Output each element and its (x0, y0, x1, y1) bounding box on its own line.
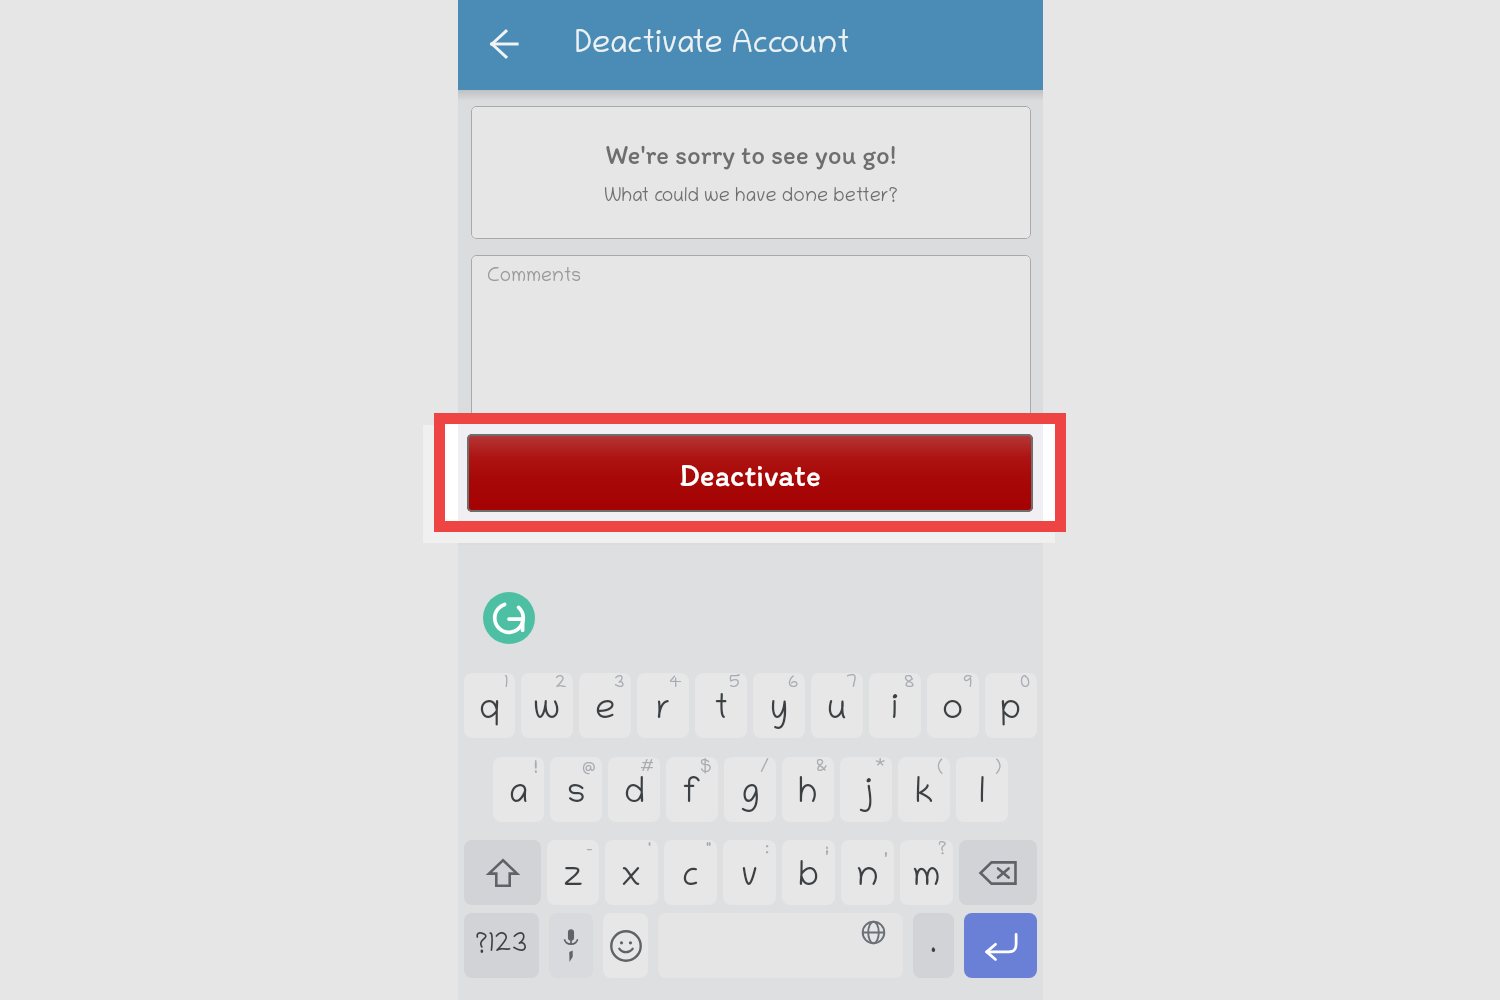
button[interactable]: e (579, 673, 631, 738)
button[interactable]: Voice input (549, 913, 593, 978)
staticText: @ (582, 758, 596, 778)
button[interactable]: u (811, 673, 863, 738)
staticText: 0 (1020, 674, 1031, 694)
staticText: s (567, 776, 586, 816)
staticText: w (533, 692, 561, 732)
button[interactable]: x (605, 840, 658, 905)
staticText: " (706, 841, 711, 861)
button[interactable]: Deactivate (467, 434, 1033, 512)
button[interactable]: o (927, 673, 979, 738)
staticText: k (915, 776, 934, 816)
staticText: y (771, 692, 788, 732)
staticText: d (624, 776, 645, 816)
staticText: p (1000, 692, 1022, 732)
staticText: * (875, 758, 886, 778)
staticText: b (798, 859, 820, 899)
button[interactable]: t (695, 673, 747, 738)
staticText: $ (700, 758, 712, 778)
staticText: v (741, 859, 759, 899)
staticText: ; (825, 841, 829, 861)
button[interactable]: Enter (964, 913, 1037, 978)
button[interactable]: Emoji (603, 913, 648, 978)
staticText: & (816, 758, 828, 778)
staticText: l (979, 776, 986, 816)
staticText: m (912, 859, 941, 899)
staticText: ( (937, 758, 944, 778)
staticText: x (621, 859, 642, 899)
button[interactable]: i (869, 673, 921, 738)
button[interactable]: b (782, 840, 835, 905)
button[interactable]: k (898, 757, 950, 822)
staticText: ?123 (475, 931, 528, 961)
button[interactable]: Comments (471, 255, 1031, 431)
staticText: z (563, 859, 584, 899)
button[interactable]: v (723, 840, 776, 905)
staticText: u (827, 692, 847, 732)
button[interactable]: y (753, 673, 805, 738)
button[interactable]: Grammarly (483, 592, 535, 644)
button[interactable]: h (782, 757, 834, 822)
staticText: Deactivate (679, 457, 821, 494)
button[interactable]: s (550, 757, 602, 822)
button[interactable]: f (666, 757, 718, 822)
staticText: . (930, 928, 937, 964)
staticText: We're sorry to see you go! (605, 138, 897, 170)
staticText: t (714, 692, 729, 732)
button[interactable]: Backspace (959, 840, 1037, 905)
staticText: i (891, 692, 899, 732)
staticText: g (740, 776, 760, 816)
staticText: 1 (504, 674, 509, 694)
staticText: f (682, 776, 702, 816)
staticText: , (884, 841, 888, 861)
button[interactable]: q (464, 673, 515, 738)
button[interactable]: m (900, 840, 953, 905)
button[interactable]: Deactivate (467, 434, 1033, 512)
staticText: 7 (846, 674, 857, 694)
staticText: h (798, 776, 818, 816)
button[interactable]: ?123 (464, 913, 539, 978)
button[interactable]: z (547, 840, 599, 905)
button[interactable]: l (956, 757, 1008, 822)
button[interactable]: g (724, 757, 776, 822)
staticText: 4 (669, 674, 683, 694)
staticText: Comments (487, 267, 582, 288)
staticText: ! (534, 758, 538, 778)
staticText: # (640, 758, 654, 778)
button[interactable]: n (841, 840, 894, 905)
button[interactable]: a (493, 757, 544, 822)
staticText: 8 (904, 674, 915, 694)
staticText: c (682, 859, 699, 899)
staticText: ) (995, 758, 1002, 778)
staticText: 6 (788, 674, 799, 694)
button[interactable]: p (985, 673, 1037, 738)
staticText: e (595, 692, 616, 732)
staticText: / (760, 758, 770, 778)
staticText: Deactivate (679, 457, 821, 494)
button[interactable]: . (913, 913, 954, 978)
staticText: 3 (614, 674, 625, 694)
button[interactable]: w (521, 673, 573, 738)
staticText: ? (938, 841, 947, 861)
staticText: : (765, 841, 770, 861)
staticText: 2 (555, 674, 567, 694)
button[interactable]: Shift (464, 840, 541, 905)
staticText: a (509, 776, 529, 816)
staticText: n (856, 859, 879, 899)
staticText: q (479, 692, 500, 732)
staticText: 5 (729, 674, 741, 694)
staticText: What could we have done better? (604, 187, 898, 208)
staticText: o (942, 692, 964, 732)
staticText: j (858, 776, 874, 816)
staticText: 9 (963, 674, 973, 694)
button[interactable]: Back (478, 18, 530, 70)
staticText: r (656, 692, 671, 732)
button[interactable]: d (608, 757, 660, 822)
button[interactable]: j (840, 757, 892, 822)
staticText: - (586, 841, 593, 861)
button[interactable]: Space (658, 913, 903, 978)
staticText: Deactivate Account (575, 29, 850, 64)
button[interactable]: c (664, 840, 717, 905)
staticText: ' (648, 841, 652, 861)
button[interactable]: r (637, 673, 689, 738)
